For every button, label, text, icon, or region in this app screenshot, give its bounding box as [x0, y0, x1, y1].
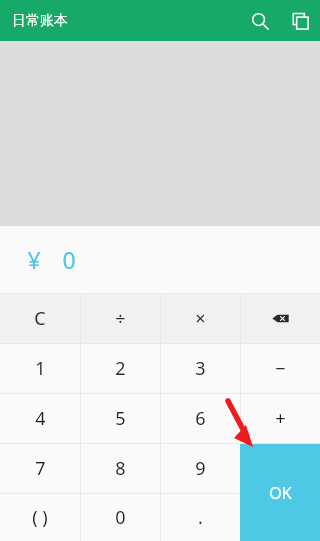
staticText: C [34, 306, 46, 331]
button[interactable]: × [161, 294, 240, 343]
staticText: 7 [35, 456, 46, 481]
staticText: 0 [62, 244, 76, 275]
staticText: 9 [195, 456, 206, 481]
button[interactable]: OK [240, 444, 320, 541]
button[interactable]: 0 [81, 494, 160, 541]
button[interactable]: Switch account book [280, 1, 320, 41]
staticText: 1 [35, 356, 46, 381]
button[interactable]: 9 [161, 444, 240, 493]
button[interactable]: 7 [0, 444, 80, 493]
button[interactable]: − [241, 344, 320, 393]
staticText: 6 [195, 406, 206, 431]
button[interactable]: Search [240, 1, 280, 41]
button[interactable]: ( ) [0, 494, 80, 541]
staticText: 5 [115, 406, 126, 431]
button[interactable]: 8 [81, 444, 160, 493]
button[interactable]: 2 [81, 344, 160, 393]
button[interactable]: 5 [81, 394, 160, 443]
staticText: 4 [35, 406, 46, 431]
staticText: ÷ [115, 306, 126, 331]
staticText: 日常账本 [12, 12, 68, 30]
button[interactable]: 4 [0, 394, 80, 443]
staticText: 2 [115, 356, 126, 381]
button[interactable]: + [241, 394, 320, 443]
staticText: 0 [115, 505, 126, 530]
button[interactable]: . [161, 494, 240, 541]
staticText: ¥ [27, 244, 41, 275]
staticText: + [275, 406, 286, 431]
button[interactable]: ¥ [0, 226, 320, 293]
staticText: × [195, 306, 206, 331]
staticText: ( ) [32, 505, 48, 530]
button[interactable]: 6 [161, 394, 240, 443]
button[interactable]: ÷ [81, 294, 160, 343]
staticText: − [275, 356, 286, 381]
button[interactable]: Backspace [241, 294, 320, 343]
staticText: 8 [115, 456, 126, 481]
button[interactable]: C [0, 294, 80, 343]
staticText: . [198, 505, 203, 530]
staticText: 3 [195, 356, 206, 381]
button[interactable]: 1 [0, 344, 80, 393]
button[interactable]: 3 [161, 344, 240, 393]
staticText: OK [269, 482, 292, 504]
